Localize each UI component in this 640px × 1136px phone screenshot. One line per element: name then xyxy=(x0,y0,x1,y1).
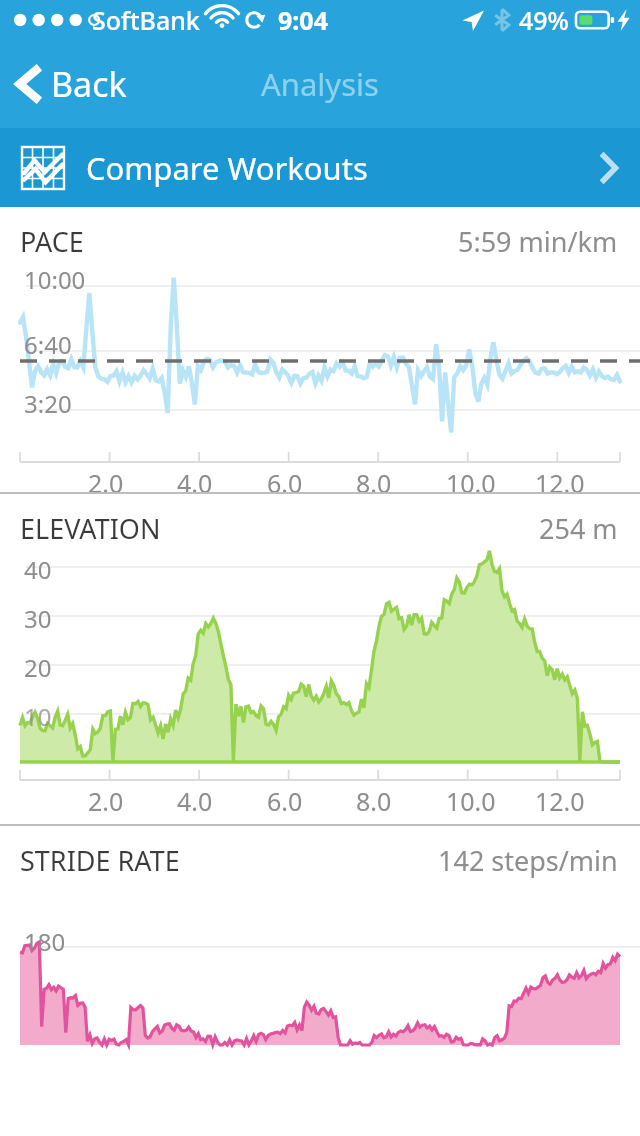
staticText: 10.0 xyxy=(446,784,496,818)
button[interactable]: Back xyxy=(0,47,147,121)
other: Open xyxy=(598,151,618,185)
staticText: SoftBank xyxy=(92,3,200,37)
staticText: 4.0 xyxy=(177,784,213,818)
button[interactable]: ELEVATION xyxy=(0,494,640,824)
staticText: Compare Workouts xyxy=(86,147,368,189)
staticText: 254 m xyxy=(539,510,618,547)
staticText: 6.0 xyxy=(267,784,303,818)
staticText: 3:20 xyxy=(24,387,72,420)
staticText: ELEVATION xyxy=(20,510,161,547)
staticText: 5:59 min/km xyxy=(458,223,618,260)
staticText: 2.0 xyxy=(88,784,124,818)
staticText: 40 xyxy=(24,553,52,586)
staticText: 10.0 xyxy=(446,466,496,500)
staticText: 6:40 xyxy=(24,328,72,361)
button[interactable]: Compare Workouts xyxy=(0,128,640,207)
staticText: 2.0 xyxy=(88,466,124,500)
staticText: 49% xyxy=(519,3,569,37)
button[interactable]: STRIDE RATE xyxy=(0,826,640,999)
staticText: 180 xyxy=(24,925,66,958)
staticText: 9:04 xyxy=(278,3,328,37)
button[interactable]: PACE xyxy=(0,207,640,492)
staticText: 142 steps/min xyxy=(438,842,618,879)
staticText: 12.0 xyxy=(535,466,585,500)
staticText: 6.0 xyxy=(267,466,303,500)
staticText: 8.0 xyxy=(356,466,392,500)
staticText: Analysis xyxy=(261,63,379,105)
staticText: Back xyxy=(51,61,127,107)
staticText: 12.0 xyxy=(535,784,585,818)
staticText: 10 xyxy=(24,700,52,733)
staticText: 8.0 xyxy=(356,784,392,818)
staticText: STRIDE RATE xyxy=(20,842,180,879)
staticText: 20 xyxy=(24,651,52,684)
staticText: 4.0 xyxy=(177,466,213,500)
staticText: 10:00 xyxy=(24,263,86,296)
staticText: PACE xyxy=(20,223,84,260)
staticText: 30 xyxy=(24,602,52,635)
